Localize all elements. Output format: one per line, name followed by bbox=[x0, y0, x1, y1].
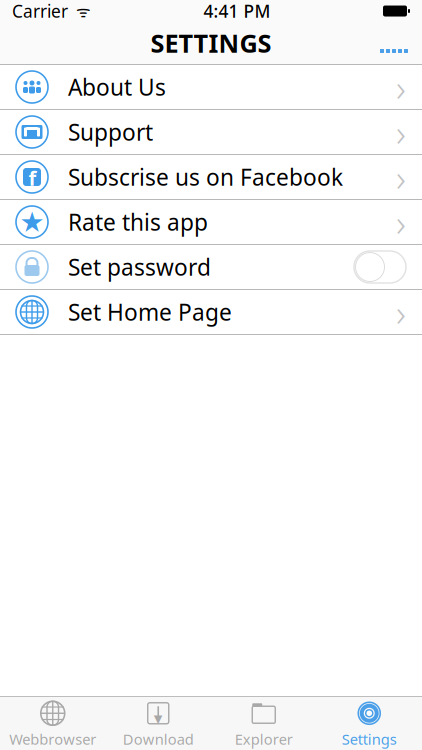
staticText: Rate this app bbox=[68, 207, 208, 237]
staticText: Explorer bbox=[235, 729, 293, 749]
button[interactable]: Settings bbox=[316, 694, 422, 750]
staticText: Settings bbox=[342, 729, 397, 749]
staticText: ᯤ bbox=[68, 0, 91, 22]
staticText: Set Home Page bbox=[68, 297, 232, 327]
staticText: Subscrise us on Facebook bbox=[68, 162, 343, 192]
staticText: › bbox=[396, 107, 406, 157]
button[interactable]: About Us bbox=[0, 65, 422, 110]
button[interactable]: Explorer bbox=[211, 694, 316, 750]
button[interactable]: More options bbox=[366, 29, 422, 57]
staticText: Webbrowser bbox=[9, 729, 96, 749]
staticText: 4:41 PM bbox=[203, 0, 270, 22]
staticText: › bbox=[396, 62, 406, 112]
staticText: › bbox=[396, 152, 406, 202]
button[interactable]: Set password bbox=[0, 245, 422, 290]
staticText: f bbox=[28, 165, 36, 191]
button[interactable]: Support bbox=[0, 110, 422, 155]
staticText: Download bbox=[123, 729, 194, 749]
staticText: ▾ bbox=[154, 708, 163, 728]
staticText: › bbox=[396, 287, 406, 337]
staticText: SETTINGS bbox=[150, 26, 271, 60]
button[interactable]: ▾ bbox=[105, 694, 211, 750]
staticText: Set password bbox=[68, 252, 211, 282]
staticText: Support bbox=[68, 117, 153, 147]
button[interactable]: Webbrowser bbox=[0, 694, 105, 750]
staticText: Carrier bbox=[12, 0, 68, 22]
staticText: ★ bbox=[19, 206, 44, 238]
staticText: About Us bbox=[68, 72, 166, 102]
button[interactable]: Set Home Page bbox=[0, 290, 422, 335]
button[interactable]: ★ bbox=[0, 200, 422, 245]
button[interactable]: f bbox=[0, 155, 422, 200]
staticText: › bbox=[396, 197, 406, 247]
